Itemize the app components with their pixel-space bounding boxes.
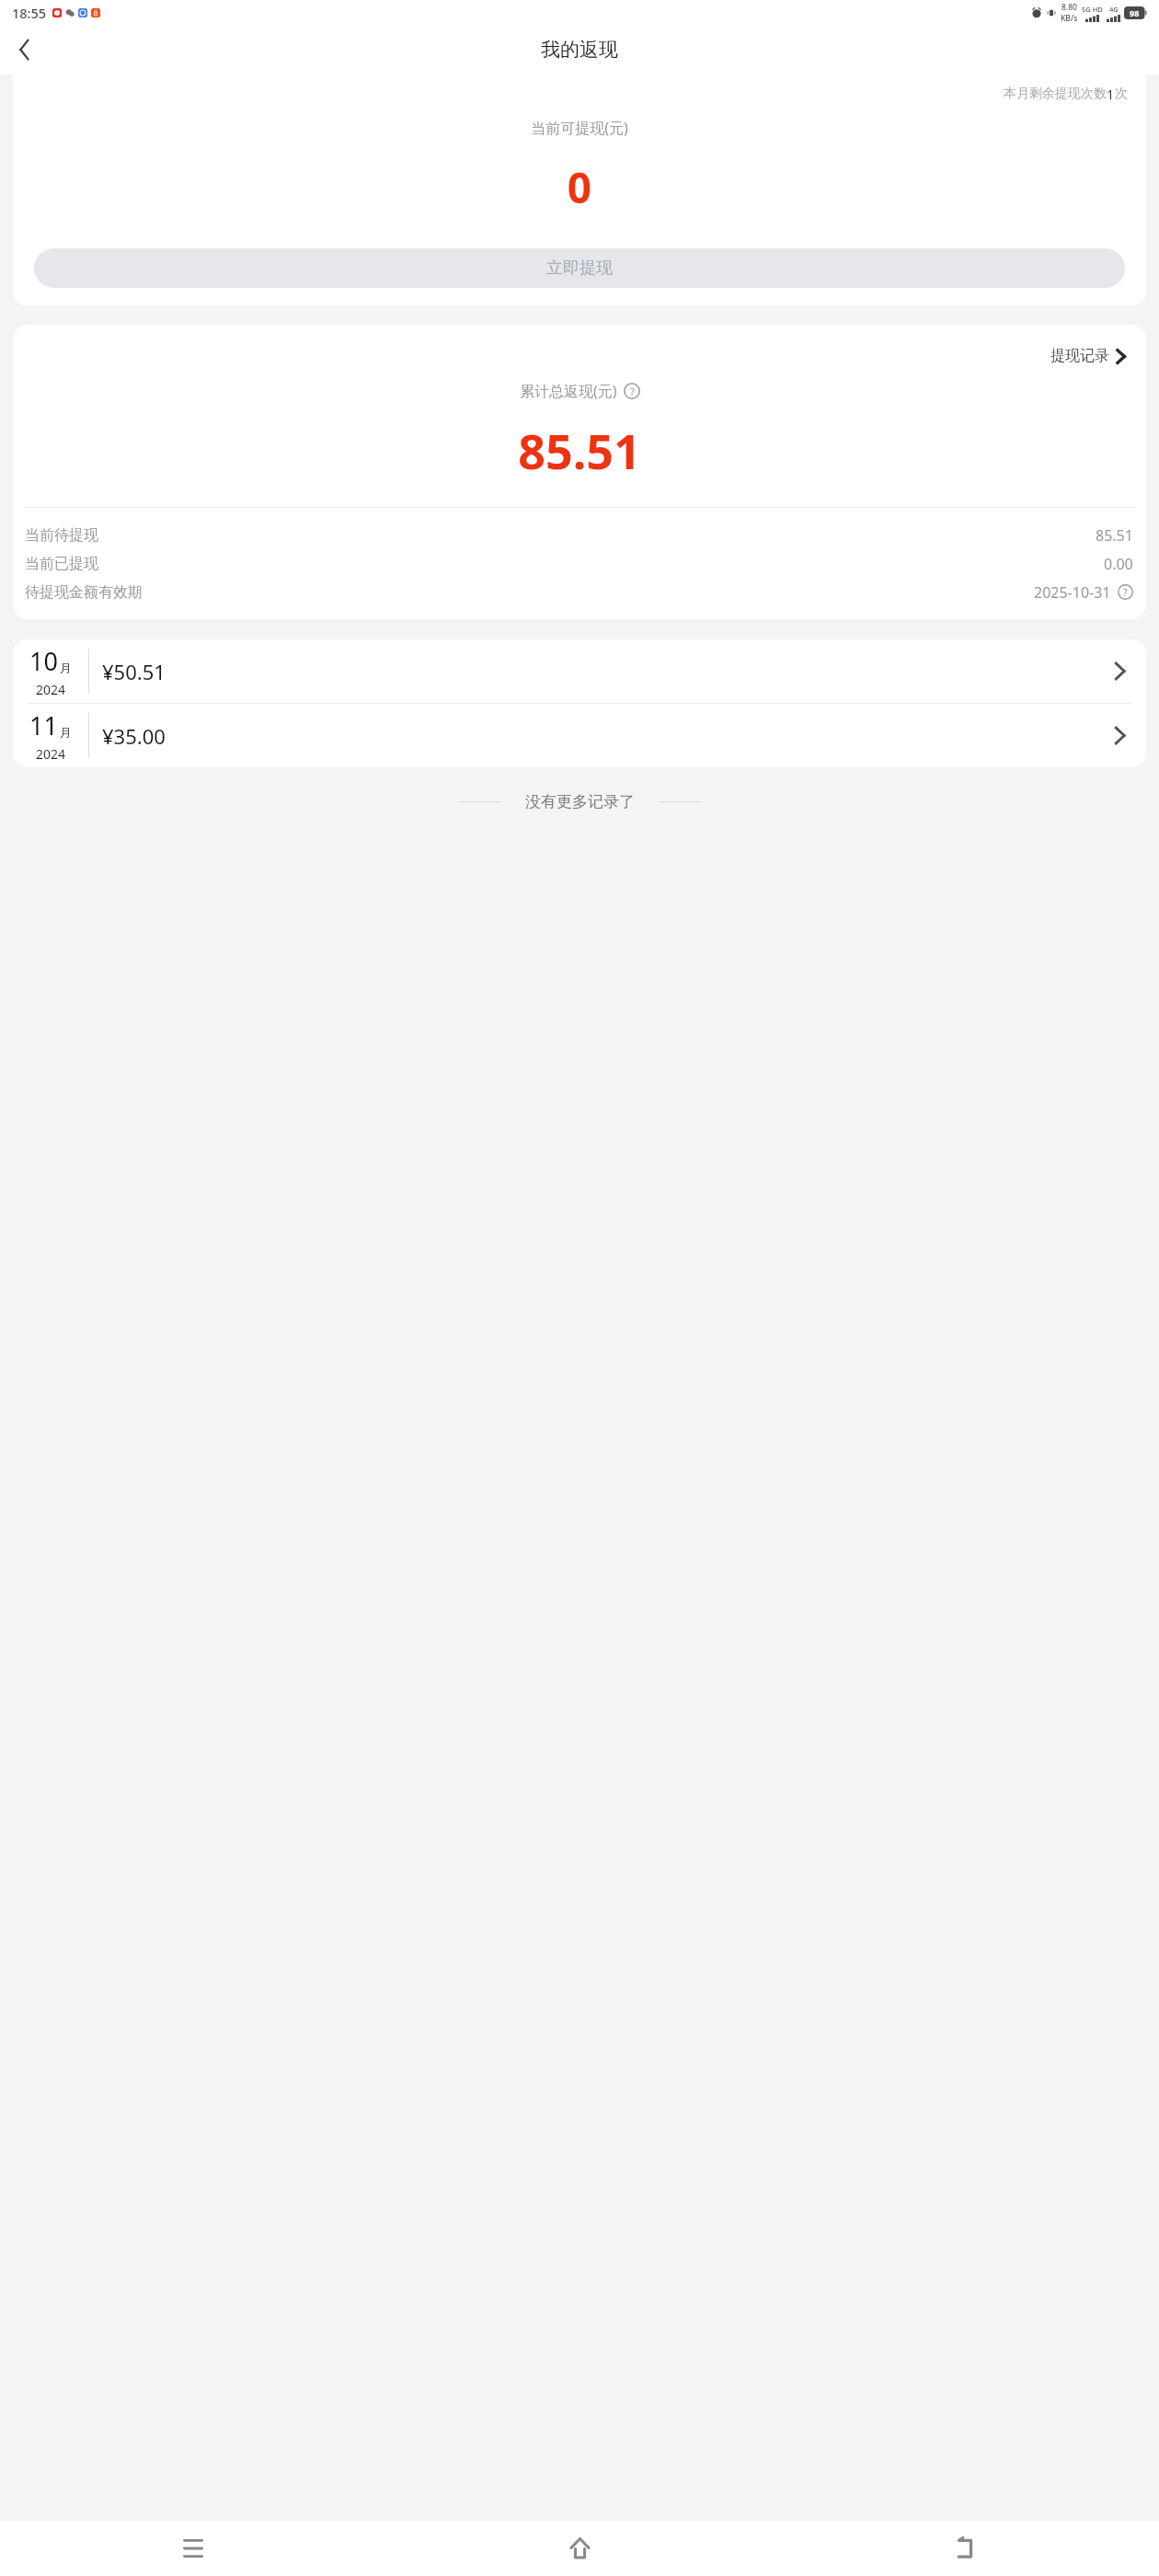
- staticText: ¥50.51: [102, 658, 166, 685]
- staticText: 11: [29, 708, 58, 742]
- staticText: ?: [1123, 586, 1128, 599]
- staticText: 当前已提现: [25, 555, 98, 573]
- staticText: 月: [60, 725, 72, 740]
- staticText: KB/s: [1061, 13, 1078, 24]
- staticText: 5G HD: [1082, 5, 1103, 14]
- button[interactable]: Back: [773, 2521, 1159, 2576]
- staticText: 没有更多记录了: [525, 792, 635, 811]
- staticText: 0.00: [1104, 554, 1133, 574]
- staticText: 8.80: [1061, 2, 1077, 13]
- staticText: 85.51: [13, 418, 1146, 483]
- button[interactable]: Recent apps: [0, 2521, 386, 2576]
- staticText: 0: [13, 158, 1146, 216]
- staticText: 2024: [36, 745, 66, 763]
- staticText: 1: [1107, 86, 1115, 103]
- staticText: 10: [29, 644, 58, 678]
- staticText: 待提现金额有效期: [25, 583, 143, 602]
- button[interactable]: Back: [0, 26, 48, 74]
- staticText: 18:55: [12, 4, 47, 22]
- button[interactable]: Home: [386, 2521, 773, 2576]
- staticText: 85.51: [1096, 525, 1133, 546]
- staticText: 累计总返现(元): [520, 381, 617, 401]
- button[interactable]: 10: [13, 639, 1146, 703]
- staticText: 立即提现: [546, 258, 613, 279]
- button[interactable]: 提现记录: [1047, 343, 1130, 369]
- staticText: 我的返现: [541, 38, 618, 62]
- staticText: 2025-10-31: [1034, 582, 1111, 603]
- staticText: 当前待提现: [25, 526, 98, 545]
- staticText: 2024: [36, 681, 66, 698]
- staticText: 次: [1115, 86, 1128, 102]
- staticText: ¥35.00: [102, 722, 166, 750]
- button[interactable]: 11: [13, 704, 1146, 767]
- button[interactable]: 立即提现: [34, 248, 1125, 288]
- staticText: ?: [630, 385, 635, 398]
- staticText: 当前可提现(元): [13, 118, 1146, 138]
- staticText: 提现记录: [1050, 347, 1109, 365]
- staticText: 月: [60, 661, 72, 675]
- staticText: 本月剩余提现次数: [1004, 86, 1107, 102]
- staticText: 4G: [1109, 5, 1119, 14]
- staticText: 98: [1130, 7, 1140, 18]
